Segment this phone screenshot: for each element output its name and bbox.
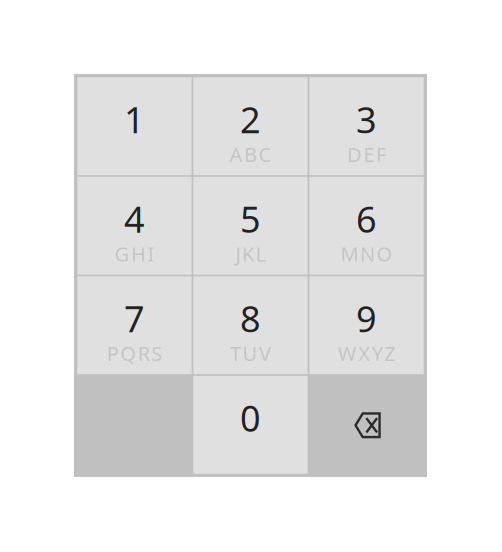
staticText: 6: [356, 195, 377, 243]
button[interactable]: 2: [193, 77, 308, 175]
staticText: 1: [124, 95, 145, 143]
staticText: 3: [356, 95, 377, 143]
button[interactable]: 3: [309, 77, 424, 175]
staticText: 4: [124, 195, 145, 243]
staticText: 0: [240, 394, 261, 442]
staticText: 9: [356, 294, 377, 342]
button[interactable]: 7: [77, 276, 192, 374]
staticText: WXYZ: [338, 340, 395, 367]
staticText: 7: [124, 294, 145, 342]
button[interactable]: 5: [193, 177, 308, 275]
staticText: DEF: [347, 141, 386, 167]
staticText: TUV: [230, 340, 271, 367]
staticText: MNO: [340, 240, 392, 267]
button[interactable]: 9: [309, 276, 424, 374]
button[interactable]: 4: [77, 177, 192, 275]
staticText: 2: [240, 95, 261, 143]
staticText: PQRS: [107, 340, 162, 367]
staticText: ABC: [229, 141, 271, 167]
staticText: 8: [240, 294, 261, 342]
button[interactable]: 0: [193, 376, 308, 474]
staticText: 5: [240, 195, 261, 243]
staticText: JKL: [235, 240, 265, 267]
button[interactable]: 8: [193, 276, 308, 374]
staticText: GHI: [114, 240, 154, 267]
button[interactable]: 6: [309, 177, 424, 275]
button[interactable]: Delete: [309, 376, 424, 474]
button[interactable]: 1: [77, 77, 192, 175]
